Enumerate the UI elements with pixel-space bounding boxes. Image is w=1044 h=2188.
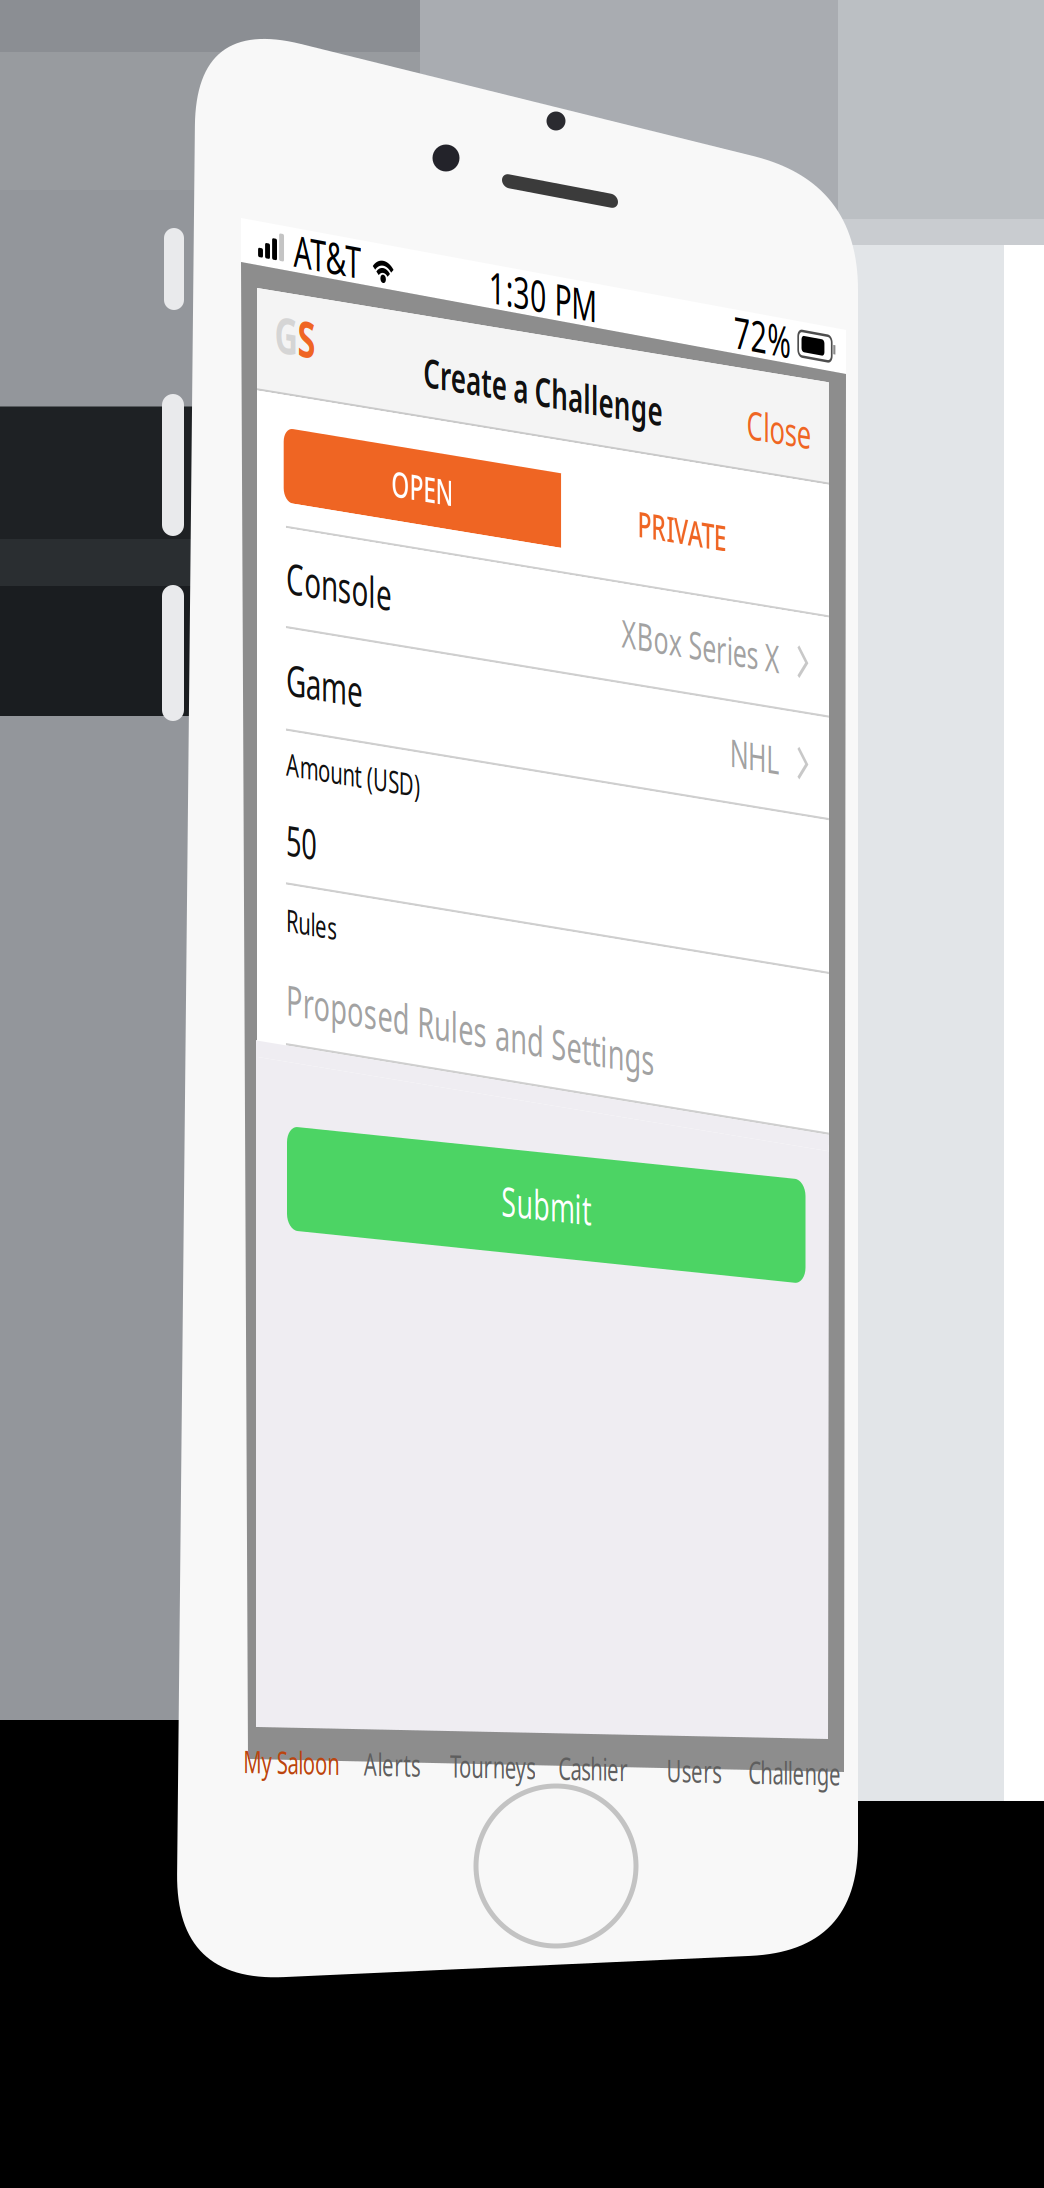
staticText: Submit xyxy=(427,1136,486,1160)
button[interactable]: PRIVATE xyxy=(456,346,614,378)
staticText: S xyxy=(283,291,295,321)
button[interactable]: Submit xyxy=(287,1126,627,1171)
staticText: G xyxy=(268,291,283,321)
staticText: Create a Challenge xyxy=(366,300,523,324)
staticText: NHL xyxy=(567,442,600,465)
button[interactable]: Users xyxy=(505,1733,571,1757)
staticText: Amount (USD) xyxy=(276,481,364,499)
staticText: My Saloon xyxy=(242,1736,305,1754)
button[interactable]: Tourneys xyxy=(373,1733,439,1757)
staticText: Rules xyxy=(276,548,309,566)
button[interactable]: Cashier xyxy=(439,1733,505,1757)
button[interactable]: Challenge xyxy=(571,1733,637,1757)
button[interactable]: Game xyxy=(257,432,632,476)
button[interactable]: My Saloon xyxy=(241,1733,307,1757)
staticText: Close xyxy=(578,300,620,323)
button[interactable]: Alerts xyxy=(307,1733,373,1757)
staticText: Proposed Rules and Settings xyxy=(276,579,518,603)
button[interactable]: Console xyxy=(257,389,632,432)
button[interactable]: Close xyxy=(566,291,632,332)
staticText: 50 xyxy=(276,510,296,535)
staticText: Game xyxy=(276,441,326,466)
staticText: XBox Series X xyxy=(496,399,600,421)
button[interactable]: OPEN xyxy=(274,346,456,378)
staticText: Console xyxy=(276,398,345,422)
staticText: AT&T xyxy=(275,215,319,241)
